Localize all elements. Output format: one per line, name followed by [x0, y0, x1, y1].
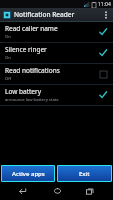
staticText: Off [5, 76, 12, 82]
button[interactable]: Recent apps [79, 182, 101, 200]
staticText: 11:04 [98, 1, 111, 8]
staticText: On [5, 34, 11, 40]
staticText: Notification Reader [14, 10, 101, 19]
staticText: Read notifications [5, 66, 60, 75]
button[interactable]: Read caller name [0, 22, 113, 42]
staticText: Exit [79, 170, 90, 178]
button[interactable]: Active apps [1, 165, 55, 182]
button[interactable]: Exit [57, 165, 112, 182]
button[interactable]: Low battery [0, 85, 113, 105]
staticText: On [5, 55, 11, 61]
staticText: Active apps [12, 170, 45, 178]
staticText: announce low battery state [5, 97, 59, 103]
staticText: Low battery [5, 87, 42, 96]
button[interactable]: Silence ringer [0, 43, 113, 63]
staticText: Silence ringer [5, 45, 47, 54]
button[interactable]: Read notifications [0, 64, 113, 84]
staticText: Read caller name [5, 24, 58, 33]
button[interactable]: More options [101, 8, 110, 21]
button[interactable]: Home [46, 182, 68, 200]
button[interactable]: Back [12, 182, 34, 200]
